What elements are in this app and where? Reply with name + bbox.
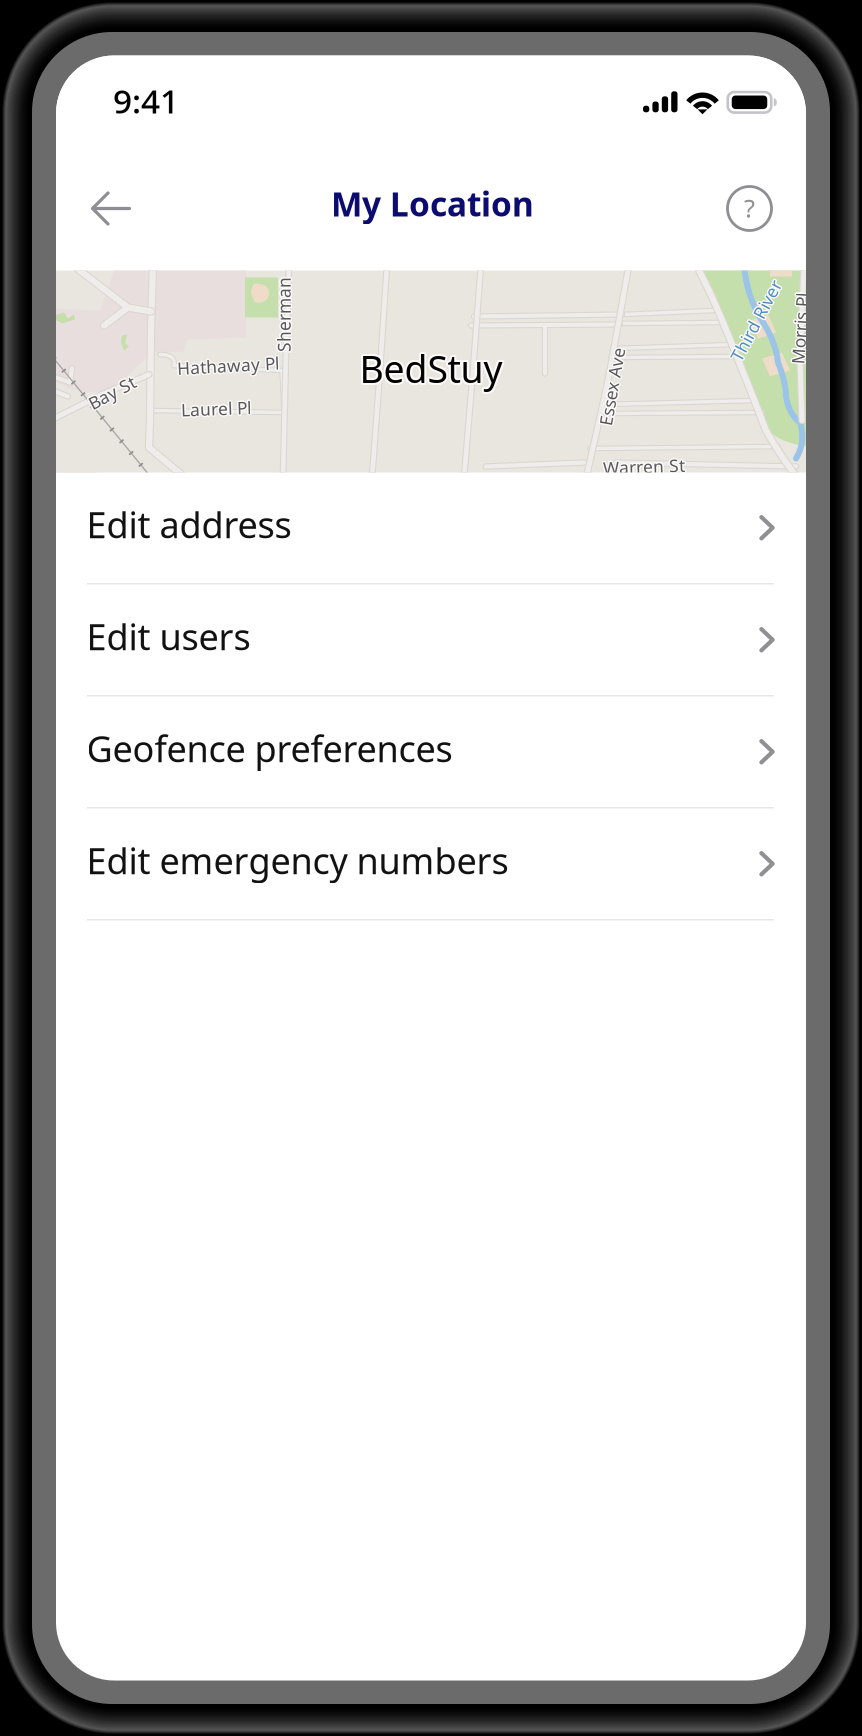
staticText: Laurel Pl xyxy=(180,396,250,419)
staticText: BedStuy xyxy=(358,344,501,394)
staticText: Warren St xyxy=(603,454,685,477)
staticText: Sherman xyxy=(245,303,320,326)
button[interactable]: Edit emergency numbers xyxy=(56,808,806,920)
staticText: Edit users xyxy=(86,612,250,660)
staticText: Morris Pl xyxy=(763,317,834,340)
staticText: Warren St xyxy=(603,456,685,479)
staticText: Hathaway Pl xyxy=(178,353,280,376)
staticText: Hathaway Pl xyxy=(177,354,279,377)
staticText: Hathaway Pl xyxy=(177,355,279,378)
staticText: Bay St xyxy=(87,382,138,405)
staticText: Third River xyxy=(711,310,800,333)
staticText: Warren St xyxy=(604,455,686,478)
staticText: BedStuy xyxy=(358,342,501,392)
staticText: Bay St xyxy=(88,381,139,404)
staticText: Morris Pl xyxy=(763,316,834,339)
staticText: Bay St xyxy=(86,380,137,403)
staticText: Essex Ave xyxy=(571,374,650,397)
staticText: Essex Ave xyxy=(573,376,652,399)
staticText: Third River xyxy=(713,309,802,332)
staticText: Bay St xyxy=(86,382,137,405)
staticText: BedStuy xyxy=(360,342,503,391)
staticText: Hathaway Pl xyxy=(178,354,280,377)
staticText: BedStuy xyxy=(361,345,504,395)
staticText: Sherman xyxy=(247,302,322,325)
staticText: BedStuy xyxy=(357,344,500,393)
staticText: Third River xyxy=(710,309,799,332)
staticText: Bay St xyxy=(86,381,137,404)
staticText: Third River xyxy=(711,310,800,333)
button[interactable]: Edit users xyxy=(56,584,806,696)
staticText: BedStuy xyxy=(361,344,504,393)
staticText: BedStuy xyxy=(361,343,504,393)
staticText: Morris Pl xyxy=(764,318,835,341)
staticText: BedStuy xyxy=(359,346,502,395)
staticText: Laurel Pl xyxy=(180,397,250,420)
staticText: Warren St xyxy=(603,456,685,479)
staticText: Laurel Pl xyxy=(180,398,250,421)
staticText: Sherman xyxy=(247,302,322,325)
staticText: Third River xyxy=(712,310,801,333)
staticText: Essex Ave xyxy=(572,374,651,397)
staticText: Sherman xyxy=(247,304,322,327)
staticText: Bay St xyxy=(87,380,138,403)
staticText: Laurel Pl xyxy=(182,396,252,419)
staticText: Sherman xyxy=(248,303,323,326)
staticText: BedStuy xyxy=(359,342,502,391)
staticText: Hathaway Pl xyxy=(176,353,278,376)
staticText: Essex Ave xyxy=(574,375,653,398)
staticText: Third River xyxy=(713,308,802,331)
staticText: Bay St xyxy=(88,381,139,404)
staticText: Morris Pl xyxy=(764,317,835,340)
staticText: Hathaway Pl xyxy=(176,354,278,377)
staticText: Warren St xyxy=(602,456,684,479)
staticText: Warren St xyxy=(604,455,686,478)
staticText: Sherman xyxy=(246,304,321,327)
staticText: Third River xyxy=(711,308,800,331)
staticText: Hathaway Pl xyxy=(176,355,278,378)
button[interactable]: Geofence preferences xyxy=(56,696,806,808)
staticText: Laurel Pl xyxy=(180,396,250,419)
staticText: Essex Ave xyxy=(573,376,652,399)
staticText: Third River xyxy=(710,309,799,332)
staticText: Morris Pl xyxy=(766,317,837,340)
staticText: Third River xyxy=(710,308,799,331)
staticText: Sherman xyxy=(245,302,320,325)
staticText: Laurel Pl xyxy=(182,398,252,421)
staticText: Third River xyxy=(712,308,801,331)
staticText: Laurel Pl xyxy=(181,396,251,419)
staticText: Morris Pl xyxy=(765,318,836,341)
staticText: Morris Pl xyxy=(765,318,836,341)
staticText: Third River xyxy=(711,310,800,333)
staticText: Edit address xyxy=(86,500,291,548)
button[interactable]: Edit address xyxy=(56,472,806,584)
staticText: Sherman xyxy=(246,302,321,325)
staticText: Morris Pl xyxy=(764,316,835,339)
staticText: Bay St xyxy=(86,380,137,403)
staticText: Edit emergency numbers xyxy=(86,836,508,884)
staticText: BedStuy xyxy=(358,345,501,395)
staticText: Bay St xyxy=(85,380,136,403)
staticText: Sherman xyxy=(248,302,323,325)
button[interactable]: Back xyxy=(90,180,146,236)
staticText: Sherman xyxy=(246,304,321,327)
staticText: Sherman xyxy=(245,303,320,326)
staticText: Essex Ave xyxy=(572,374,651,397)
staticText: Sherman xyxy=(246,303,321,326)
staticText: Morris Pl xyxy=(764,318,835,341)
staticText: BedStuy xyxy=(359,344,502,393)
staticText: ? xyxy=(744,191,755,225)
staticText: Laurel Pl xyxy=(181,397,251,420)
staticText: Warren St xyxy=(603,454,685,477)
staticText: Essex Ave xyxy=(572,375,651,398)
staticText: Bay St xyxy=(86,380,137,403)
staticText: Laurel Pl xyxy=(182,396,252,419)
staticText: Hathaway Pl xyxy=(178,354,280,377)
staticText: Essex Ave xyxy=(572,376,651,399)
staticText: Geofence preferences xyxy=(86,724,452,772)
button[interactable]: Help xyxy=(721,180,777,236)
staticText: Bay St xyxy=(86,382,137,405)
staticText: Warren St xyxy=(602,455,684,478)
staticText: Warren St xyxy=(602,455,684,478)
staticText: Third River xyxy=(712,310,801,333)
